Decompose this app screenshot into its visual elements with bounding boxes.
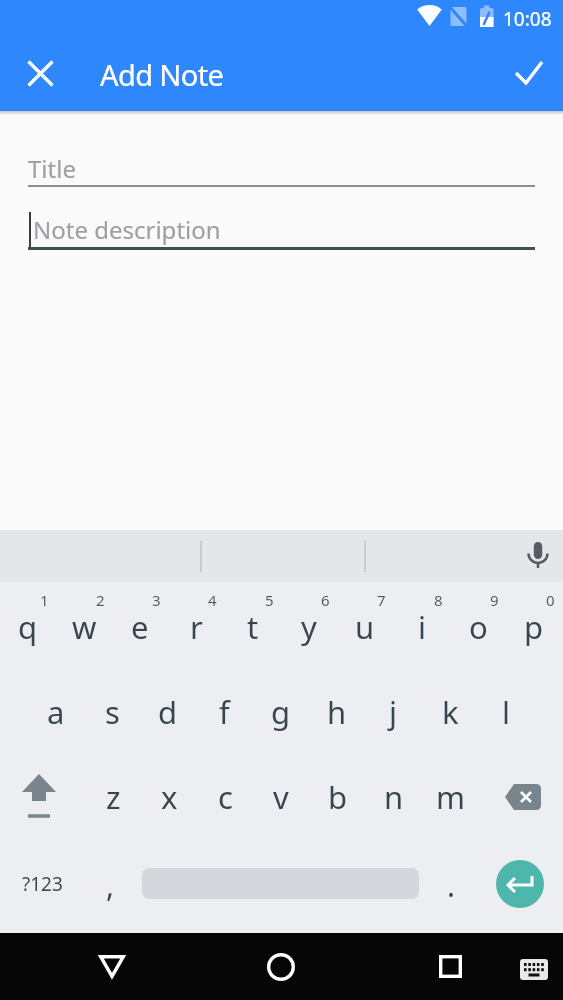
staticText: y [301,606,317,648]
button[interactable]: l [478,680,534,744]
staticText: s [105,691,120,733]
button[interactable]: n [366,765,422,829]
staticText: h [327,691,347,733]
staticText: f [219,691,230,733]
button[interactable]: o [450,595,506,659]
staticText: 10:08 [503,6,552,32]
button[interactable]: z [85,765,141,829]
staticText: p [524,606,544,648]
staticText: Add Note [100,55,224,94]
button[interactable] [4,762,74,832]
button[interactable] [246,933,316,1000]
staticText: l [502,691,510,733]
staticText: . [447,865,456,906]
staticText: k [442,691,459,733]
button[interactable]: e [112,595,168,659]
button[interactable]: i [394,595,450,659]
staticText: 0 [546,590,555,610]
staticText: 4 [208,590,217,610]
staticText: g [271,691,291,733]
button[interactable]: d [140,680,196,744]
staticText: c [218,776,233,818]
staticText: 8 [434,590,443,610]
button[interactable]: b [310,765,366,829]
button[interactable]: q [0,595,56,659]
staticText: 2 [96,590,105,610]
staticText: o [469,606,488,648]
button[interactable]: r [168,595,224,659]
staticText: e [131,606,149,648]
staticText: i [418,606,426,648]
button[interactable] [505,48,553,96]
button[interactable]: s [84,680,140,744]
staticText: t [247,606,259,648]
button[interactable]: j [365,680,421,744]
staticText: Title [28,152,76,185]
staticText: a [47,691,65,733]
button[interactable]: Note description [28,206,535,250]
button[interactable]: x [141,765,197,829]
button[interactable]: p [506,595,562,659]
button[interactable] [508,946,560,992]
staticText: 9 [490,590,499,610]
staticText: Note description [33,213,221,246]
button[interactable]: . [423,853,479,917]
button[interactable]: a [28,680,84,744]
button[interactable] [16,49,64,97]
staticText: v [273,776,289,818]
staticText: , [106,865,115,906]
button[interactable]: ?123 [2,854,82,914]
button[interactable]: y [281,595,337,659]
staticText: u [355,606,375,648]
staticText: 6 [321,590,330,610]
button[interactable]: w [56,595,112,659]
staticText: j [389,691,397,733]
staticText: ?123 [22,871,63,897]
button[interactable]: Title [28,141,535,187]
button[interactable]: c [197,765,253,829]
staticText: 1 [40,590,49,610]
button[interactable] [77,933,147,1000]
button[interactable]: f [196,680,252,744]
button[interactable]: v [253,765,309,829]
button[interactable]: h [309,680,365,744]
button[interactable]: m [422,765,478,829]
button[interactable]: , [82,853,138,917]
button[interactable]: g [253,680,309,744]
staticText: x [161,776,178,818]
button[interactable]: k [422,680,478,744]
staticText: b [328,776,348,818]
staticText: z [106,776,121,818]
button[interactable]: u [337,595,393,659]
button[interactable] [515,533,560,578]
staticText: r [190,606,203,648]
button[interactable] [415,933,485,1000]
staticText: q [18,606,38,648]
button[interactable] [488,762,558,832]
staticText: 7 [377,590,386,610]
staticText: n [384,776,404,818]
staticText: 3 [152,590,161,610]
staticText: 5 [265,590,274,610]
button[interactable]: t [225,595,281,659]
button[interactable] [496,860,544,908]
staticText: w [72,606,97,648]
staticText: m [436,776,465,818]
staticText: d [158,691,178,733]
